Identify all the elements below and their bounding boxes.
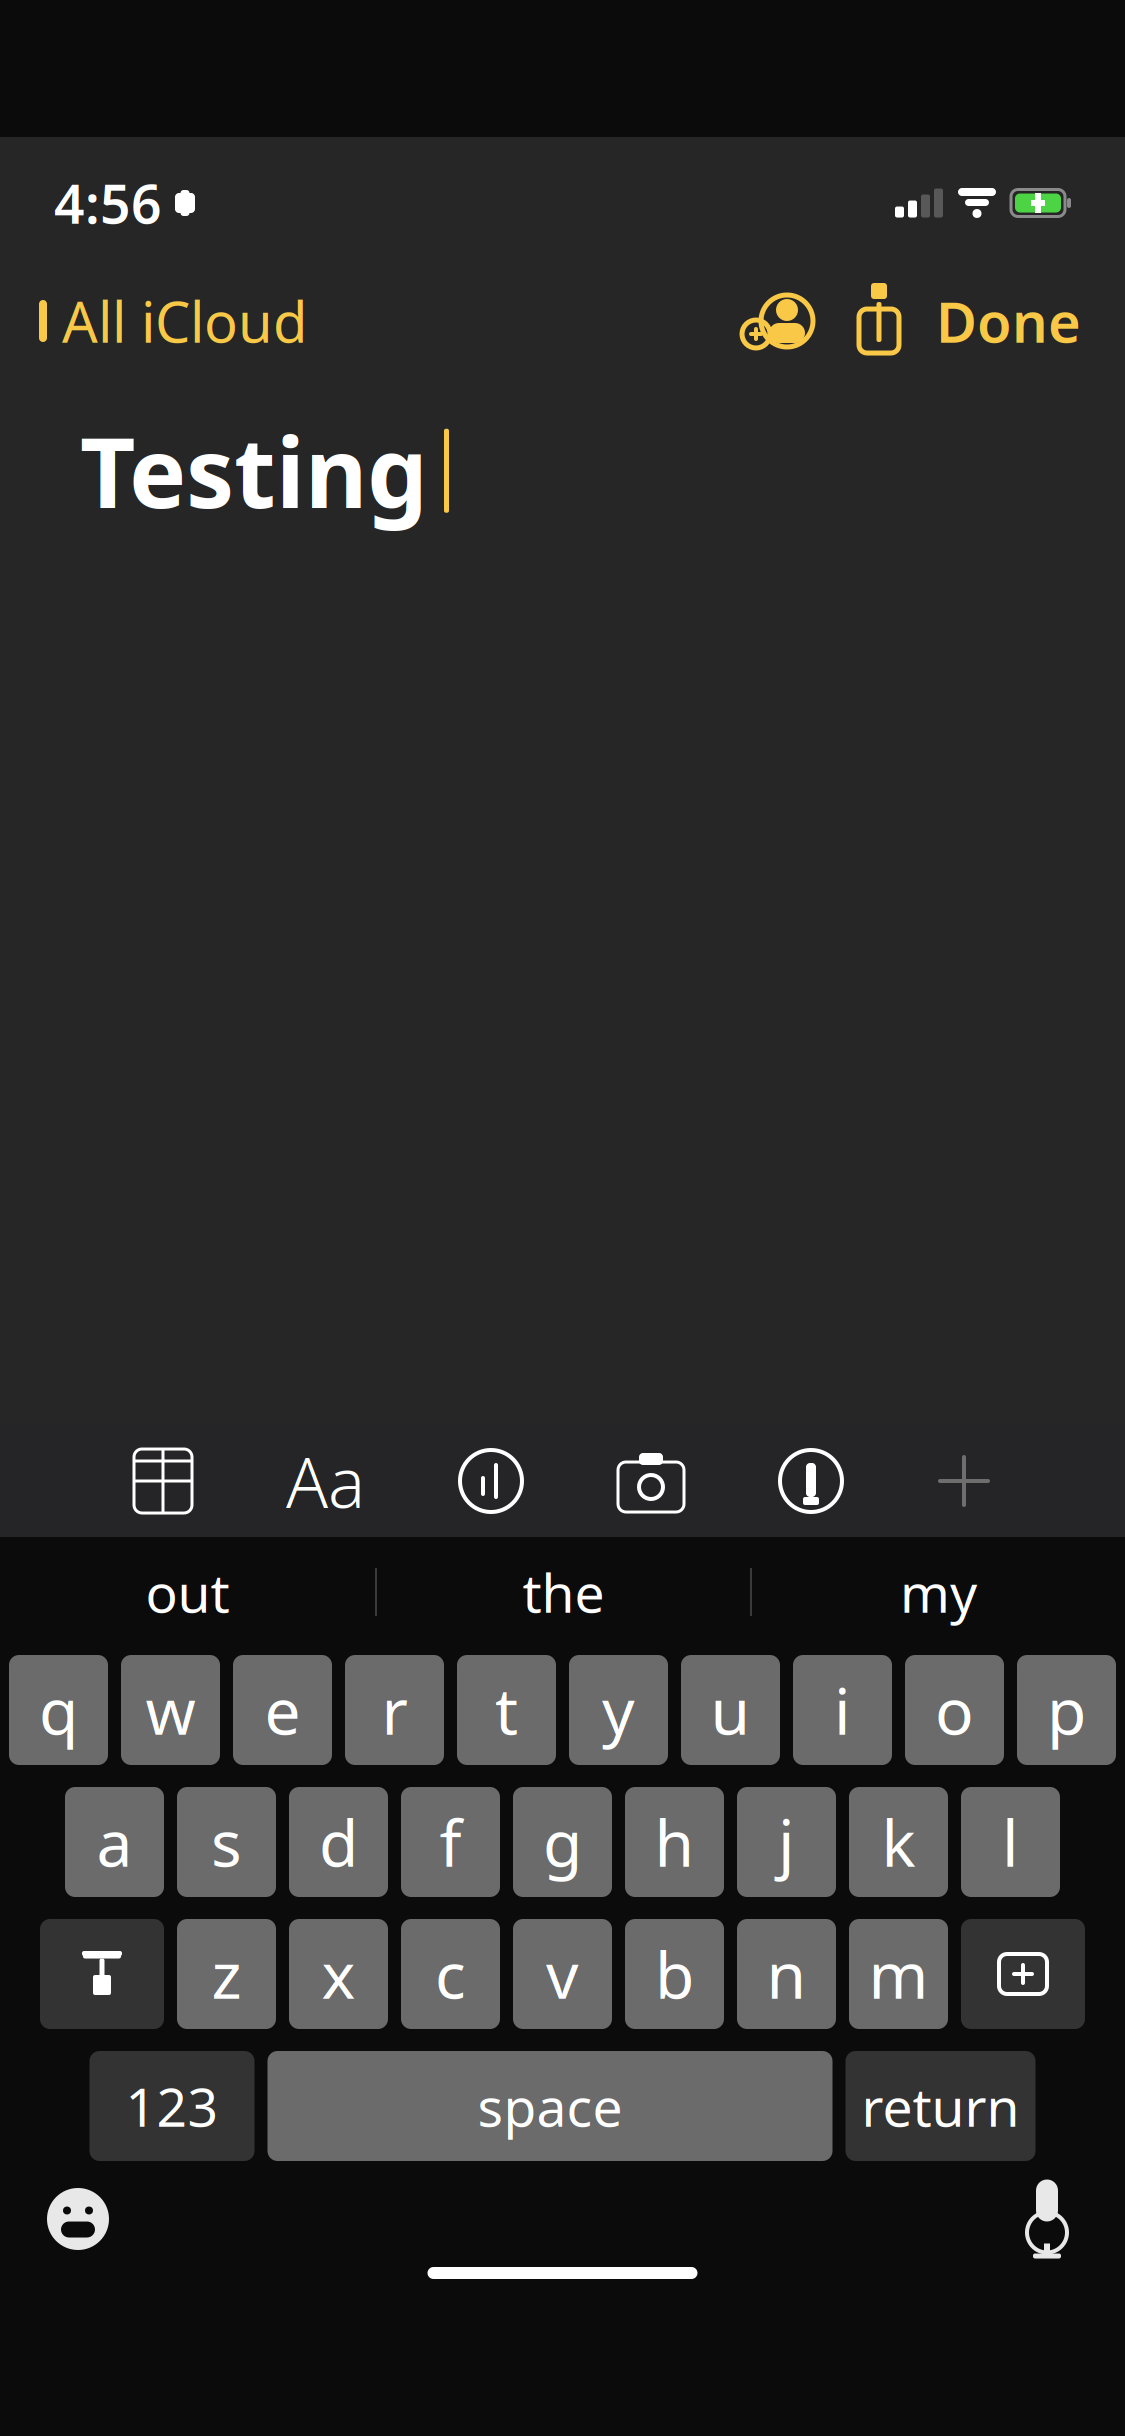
button[interactable]: Markup bbox=[779, 1449, 843, 1513]
staticText: f bbox=[439, 1799, 461, 1884]
button[interactable]: r bbox=[345, 1655, 444, 1765]
button[interactable]: Dictate bbox=[1007, 2179, 1087, 2259]
staticText: y bbox=[602, 1667, 635, 1752]
staticText: l bbox=[1002, 1799, 1019, 1884]
button[interactable]: Format bbox=[286, 1435, 365, 1527]
button[interactable]: q bbox=[9, 1655, 108, 1765]
staticText: g bbox=[543, 1799, 582, 1884]
staticText: Done bbox=[936, 284, 1081, 358]
button[interactable]: d bbox=[289, 1787, 388, 1897]
staticText: 4:56 bbox=[54, 168, 162, 238]
staticText: z bbox=[211, 1931, 241, 2016]
staticText: 123 bbox=[125, 2071, 218, 2141]
button[interactable]: k bbox=[849, 1787, 948, 1897]
button[interactable]: 123 bbox=[89, 2051, 254, 2161]
button[interactable]: All iCloud bbox=[26, 274, 313, 368]
button[interactable]: Checklist bbox=[459, 1449, 523, 1513]
button[interactable]: l bbox=[961, 1787, 1060, 1897]
staticText: h bbox=[654, 1799, 694, 1884]
button[interactable]: Shift bbox=[40, 1919, 164, 2029]
staticText: d bbox=[319, 1799, 358, 1884]
button[interactable]: a bbox=[65, 1787, 164, 1897]
staticText: q bbox=[39, 1667, 78, 1752]
button[interactable]: v bbox=[513, 1919, 612, 2029]
button[interactable]: Add People bbox=[726, 290, 830, 352]
button[interactable]: w bbox=[121, 1655, 220, 1765]
button[interactable]: Emoji bbox=[38, 2179, 118, 2259]
button[interactable]: y bbox=[569, 1655, 668, 1765]
button[interactable]: return bbox=[845, 2051, 1035, 2161]
staticText: t bbox=[495, 1667, 518, 1752]
button[interactable]: s bbox=[177, 1787, 276, 1897]
button[interactable]: c bbox=[401, 1919, 500, 2029]
button[interactable]: Camera bbox=[617, 1449, 685, 1513]
button[interactable]: Delete bbox=[961, 1919, 1085, 2029]
button[interactable]: Close bbox=[937, 1454, 991, 1508]
button[interactable]: Table bbox=[134, 1449, 192, 1513]
button[interactable]: Share bbox=[830, 286, 928, 356]
staticText: u bbox=[710, 1667, 750, 1752]
staticText: s bbox=[211, 1799, 242, 1884]
button[interactable]: my bbox=[752, 1546, 1125, 1638]
staticText: the bbox=[522, 1557, 604, 1627]
staticText: out bbox=[145, 1557, 229, 1627]
button[interactable]: Done bbox=[928, 274, 1089, 368]
staticText: my bbox=[900, 1557, 977, 1627]
staticText: o bbox=[935, 1667, 974, 1752]
staticText: x bbox=[321, 1931, 355, 2016]
button[interactable]: b bbox=[625, 1919, 724, 2029]
staticText: b bbox=[655, 1931, 694, 2016]
staticText: c bbox=[435, 1931, 466, 2016]
staticText: r bbox=[381, 1667, 407, 1752]
staticText: space bbox=[477, 2071, 622, 2141]
button[interactable]: t bbox=[457, 1655, 556, 1765]
staticText: j bbox=[778, 1799, 795, 1884]
staticText: e bbox=[264, 1667, 300, 1752]
button[interactable]: p bbox=[1017, 1655, 1116, 1765]
staticText: i bbox=[834, 1667, 851, 1752]
button[interactable]: e bbox=[233, 1655, 332, 1765]
button[interactable]: space bbox=[267, 2051, 832, 2161]
button[interactable]: out bbox=[0, 1546, 375, 1638]
button[interactable]: u bbox=[681, 1655, 780, 1765]
button[interactable]: o bbox=[905, 1655, 1004, 1765]
staticText: All iCloud bbox=[62, 284, 307, 358]
staticText: Testing bbox=[80, 407, 428, 534]
button[interactable]: f bbox=[401, 1787, 500, 1897]
button[interactable]: z bbox=[177, 1919, 276, 2029]
staticText: p bbox=[1047, 1667, 1086, 1752]
button[interactable]: the bbox=[377, 1546, 750, 1638]
staticText: Aa bbox=[286, 1435, 365, 1527]
button[interactable]: h bbox=[625, 1787, 724, 1897]
button[interactable]: m bbox=[849, 1919, 948, 2029]
staticText: n bbox=[766, 1931, 806, 2016]
staticText: v bbox=[546, 1931, 579, 2016]
button[interactable]: x bbox=[289, 1919, 388, 2029]
button[interactable]: j bbox=[737, 1787, 836, 1897]
staticText: return bbox=[861, 2071, 1019, 2141]
staticText: w bbox=[145, 1667, 195, 1752]
button[interactable]: n bbox=[737, 1919, 836, 2029]
button[interactable]: g bbox=[513, 1787, 612, 1897]
staticText: m bbox=[868, 1931, 928, 2016]
staticText: k bbox=[881, 1799, 915, 1884]
staticText: a bbox=[96, 1799, 132, 1884]
button[interactable]: i bbox=[793, 1655, 892, 1765]
